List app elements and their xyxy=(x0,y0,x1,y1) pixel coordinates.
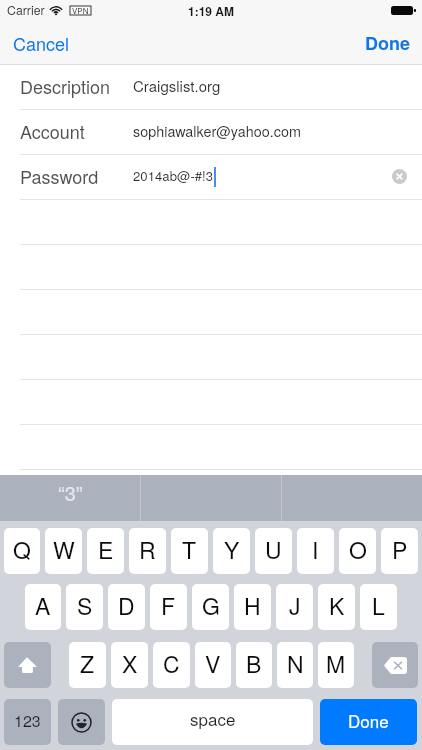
staticText: L xyxy=(372,589,385,622)
staticText: B xyxy=(246,647,262,680)
button[interactable]: Emoji keyboard xyxy=(58,699,105,745)
button[interactable]: G xyxy=(192,584,229,630)
staticText: Y xyxy=(224,533,240,566)
staticText: D xyxy=(118,589,135,622)
button[interactable]: I xyxy=(297,528,334,574)
staticText: N xyxy=(287,647,304,680)
button[interactable]: B xyxy=(236,642,272,688)
staticText: J xyxy=(289,589,301,622)
staticText: Account xyxy=(20,118,85,144)
staticText: sophiawalker@yahoo.com xyxy=(133,120,301,141)
staticText: C xyxy=(163,647,180,680)
staticText: G xyxy=(202,589,220,622)
staticText: “3” xyxy=(58,478,83,507)
button[interactable]: W xyxy=(45,528,82,574)
button[interactable]: T xyxy=(171,528,208,574)
staticText: W xyxy=(53,533,75,566)
button[interactable]: P xyxy=(381,528,418,574)
staticText: F xyxy=(161,589,176,622)
button[interactable]: “3” xyxy=(0,475,140,521)
button[interactable]: L xyxy=(360,584,397,630)
button[interactable]: Password xyxy=(0,155,422,200)
staticText: U xyxy=(265,533,282,566)
staticText: H xyxy=(244,589,261,622)
button[interactable]: Shift xyxy=(4,642,51,688)
button[interactable]: S xyxy=(66,584,103,630)
button[interactable]: space xyxy=(112,699,313,745)
button[interactable]: A xyxy=(25,584,61,630)
button[interactable]: M xyxy=(318,642,354,688)
staticText: Z xyxy=(80,647,95,680)
staticText: P xyxy=(392,533,408,566)
button[interactable]: Done xyxy=(352,20,422,65)
staticText: Done xyxy=(365,30,410,56)
staticText: Description xyxy=(20,73,110,99)
button[interactable]: Z xyxy=(69,642,106,688)
staticText: E xyxy=(98,533,114,566)
button[interactable]: H xyxy=(234,584,271,630)
button[interactable]: F xyxy=(150,584,187,630)
staticText: S xyxy=(77,589,93,622)
button[interactable]: J xyxy=(276,584,313,630)
staticText: Cancel xyxy=(13,30,70,56)
button[interactable]: C xyxy=(153,642,190,688)
staticText: Done xyxy=(348,708,389,732)
staticText: Q xyxy=(13,533,31,566)
staticText: T xyxy=(182,533,197,566)
button[interactable]: N xyxy=(277,642,313,688)
staticText: X xyxy=(122,647,138,680)
button[interactable]: Cancel xyxy=(0,20,83,65)
button[interactable]: X xyxy=(111,642,148,688)
staticText: K xyxy=(329,589,345,622)
button[interactable]: Y xyxy=(213,528,250,574)
staticText: VPN xyxy=(72,5,89,14)
button[interactable]: U xyxy=(255,528,292,574)
button[interactable]: K xyxy=(318,584,355,630)
staticText: Craigslist.org xyxy=(133,75,221,96)
button[interactable]: E xyxy=(87,528,124,574)
button[interactable]: Account xyxy=(0,110,422,155)
staticText: 1:19 AM xyxy=(188,2,235,19)
staticText: A xyxy=(35,589,51,622)
button[interactable]: D xyxy=(108,584,145,630)
button[interactable]: R xyxy=(129,528,166,574)
staticText: V xyxy=(205,647,221,680)
staticText: 2014ab@-#!3 xyxy=(133,166,214,185)
button[interactable]: V xyxy=(195,642,231,688)
staticText: R xyxy=(139,533,156,566)
staticText: 123 xyxy=(14,709,41,732)
button[interactable]: Clear text xyxy=(392,169,407,184)
button[interactable]: Q xyxy=(4,528,40,574)
button[interactable]: 123 xyxy=(4,699,51,745)
button[interactable]: Backspace xyxy=(372,642,418,688)
staticText: I xyxy=(312,533,319,566)
button[interactable]: Done xyxy=(320,699,417,745)
button[interactable]: O xyxy=(339,528,376,574)
staticText: space xyxy=(190,706,236,730)
button[interactable]: Description xyxy=(0,65,422,110)
staticText: Password xyxy=(20,163,99,189)
staticText: M xyxy=(326,647,346,680)
staticText: Carrier xyxy=(7,1,45,19)
staticText: O xyxy=(349,533,367,566)
